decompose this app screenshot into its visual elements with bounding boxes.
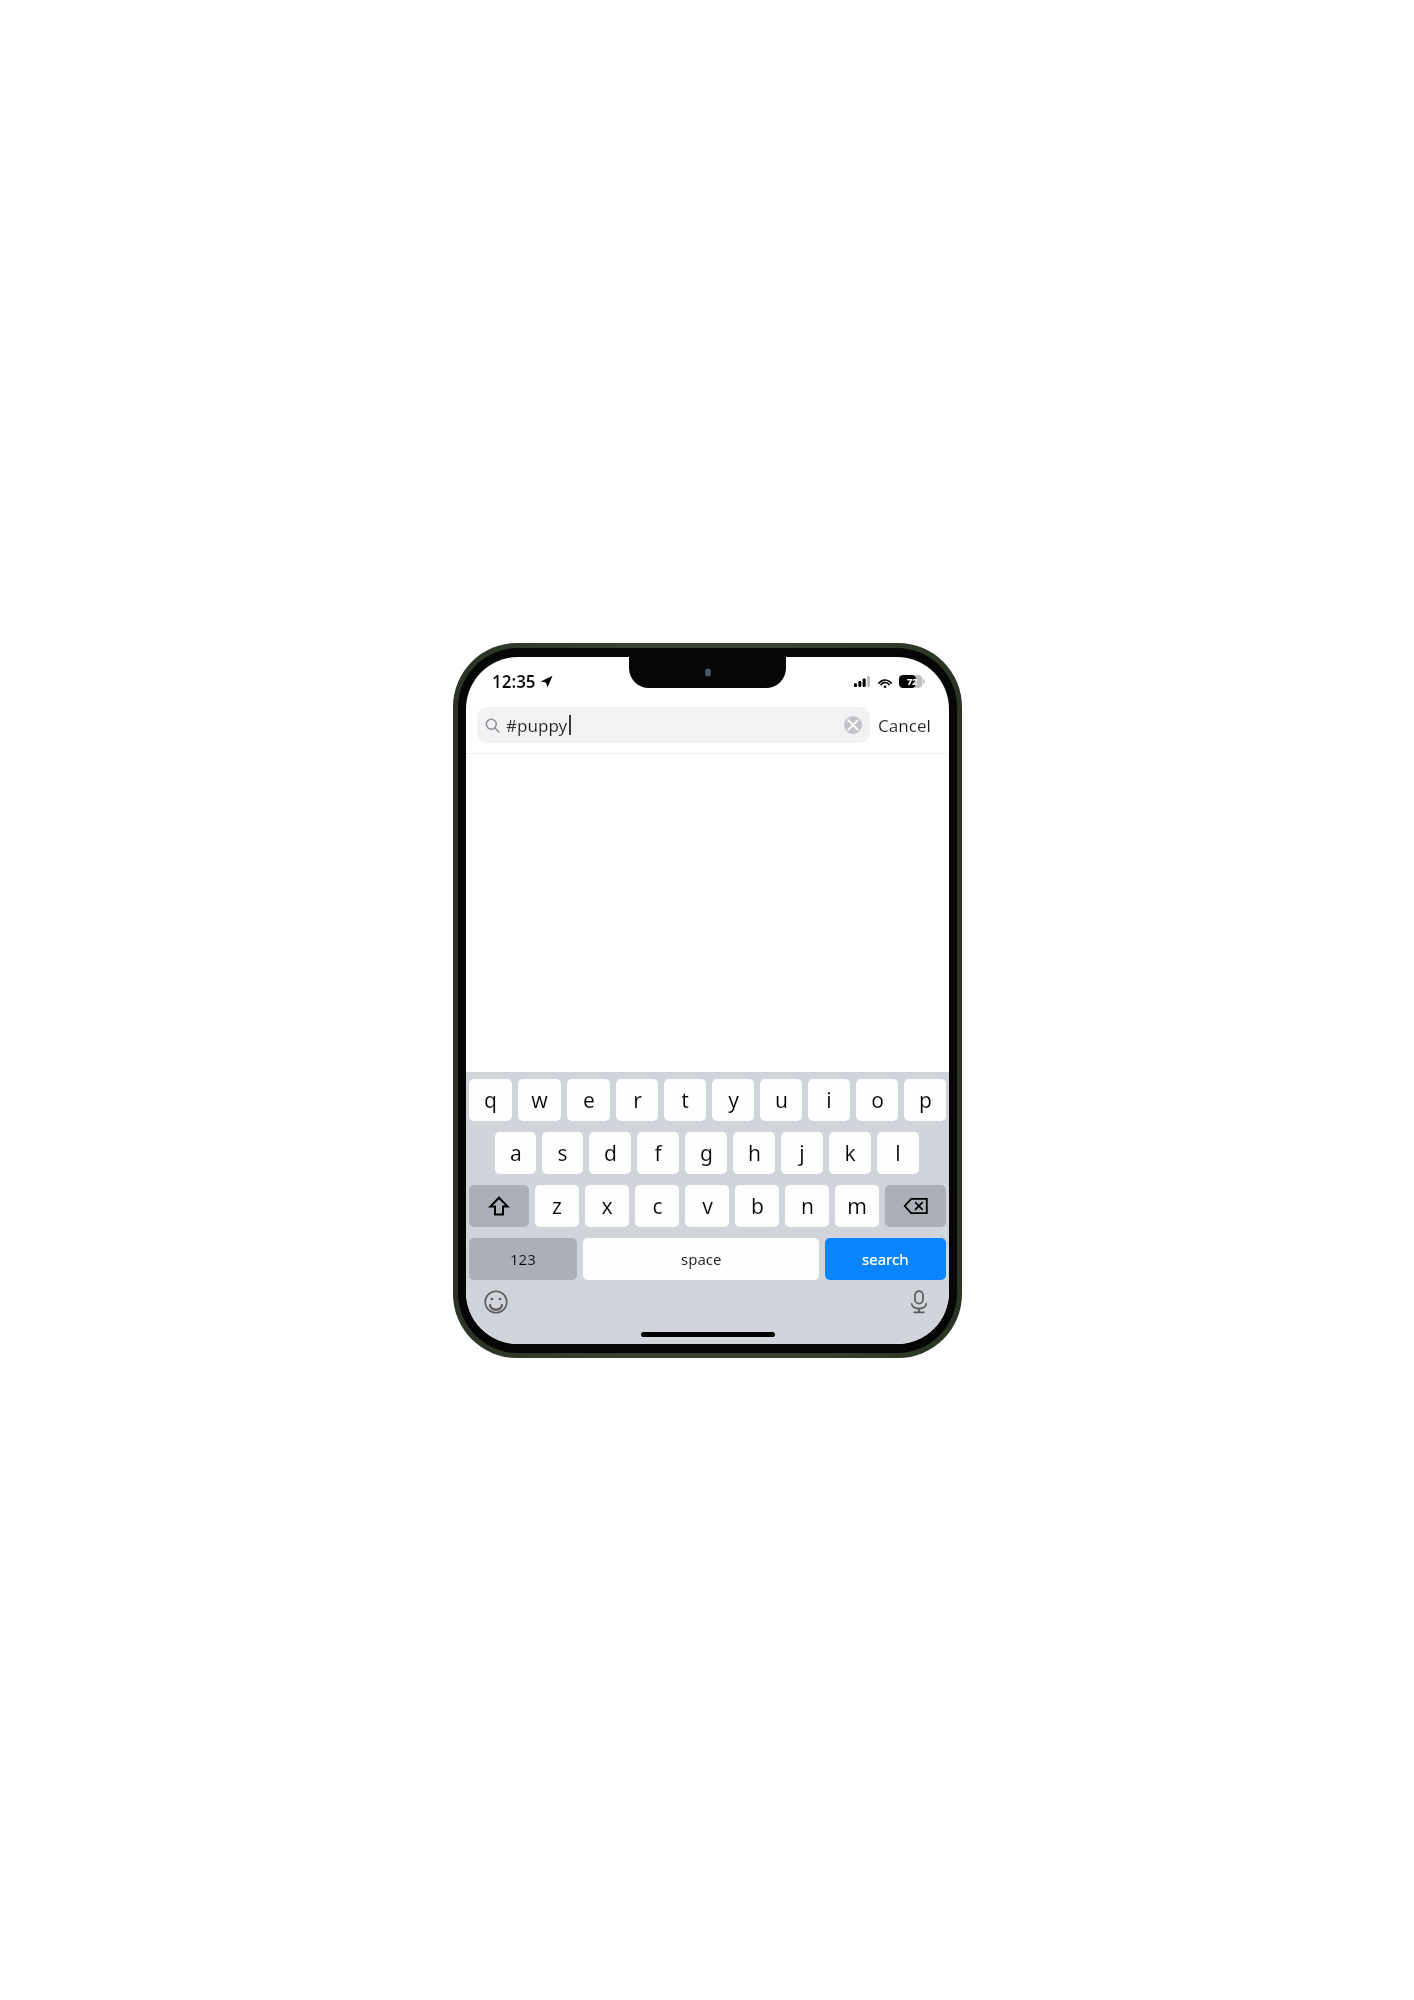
button[interactable]: w xyxy=(518,1079,561,1121)
staticText: m xyxy=(847,1192,867,1221)
staticText: n xyxy=(801,1192,814,1221)
button[interactable]: q xyxy=(469,1079,512,1121)
button[interactable]: Cancel xyxy=(870,708,939,743)
button[interactable]: Clear text xyxy=(844,716,862,734)
staticText: 72 xyxy=(907,675,918,687)
button[interactable]: d xyxy=(589,1132,631,1174)
staticText: e xyxy=(583,1086,595,1115)
button[interactable]: #puppy xyxy=(477,707,870,743)
staticText: i xyxy=(826,1086,832,1115)
button[interactable]: e xyxy=(567,1079,610,1121)
button[interactable]: f xyxy=(637,1132,679,1174)
button[interactable]: c xyxy=(635,1185,679,1227)
staticText: k xyxy=(844,1139,856,1168)
staticText: 123 xyxy=(510,1249,536,1269)
staticText: space xyxy=(681,1249,722,1269)
staticText: x xyxy=(601,1192,613,1221)
staticText: f xyxy=(654,1139,662,1168)
button[interactable]: space xyxy=(583,1238,819,1280)
staticText: search xyxy=(862,1249,909,1269)
staticText: u xyxy=(775,1086,788,1115)
button[interactable]: o xyxy=(856,1079,898,1121)
staticText: j xyxy=(799,1139,805,1168)
staticText: l xyxy=(895,1139,901,1168)
button[interactable]: m xyxy=(835,1185,879,1227)
staticText: c xyxy=(652,1192,663,1221)
button[interactable]: Shift xyxy=(469,1185,529,1227)
button[interactable]: Emoji keyboard xyxy=(482,1288,510,1316)
button[interactable]: h xyxy=(733,1132,775,1174)
staticText: y xyxy=(728,1086,739,1115)
staticText: p xyxy=(919,1086,932,1115)
staticText: t xyxy=(681,1086,689,1115)
button[interactable]: z xyxy=(535,1185,579,1227)
staticText: g xyxy=(700,1139,713,1168)
button[interactable]: y xyxy=(712,1079,754,1121)
button[interactable]: s xyxy=(542,1132,583,1174)
button[interactable]: n xyxy=(785,1185,829,1227)
button[interactable]: u xyxy=(760,1079,802,1121)
staticText: o xyxy=(871,1086,884,1115)
staticText: v xyxy=(702,1192,713,1221)
button[interactable]: v xyxy=(685,1185,729,1227)
staticText: 12:35 xyxy=(492,670,536,693)
staticText: d xyxy=(604,1139,617,1168)
staticText: a xyxy=(510,1139,522,1168)
staticText: h xyxy=(748,1139,761,1168)
button[interactable]: a xyxy=(495,1132,536,1174)
staticText: w xyxy=(531,1086,548,1115)
button[interactable]: Backspace xyxy=(885,1185,946,1227)
button[interactable]: j xyxy=(781,1132,823,1174)
staticText: z xyxy=(552,1192,562,1221)
button[interactable]: x xyxy=(585,1185,629,1227)
button[interactable]: r xyxy=(616,1079,658,1121)
staticText: q xyxy=(484,1086,497,1115)
button[interactable]: Dictation xyxy=(905,1288,933,1316)
button[interactable]: search xyxy=(825,1238,946,1280)
button[interactable]: t xyxy=(664,1079,706,1121)
staticText: #puppy xyxy=(506,714,568,737)
button[interactable]: b xyxy=(735,1185,779,1227)
staticText: r xyxy=(633,1086,642,1115)
button[interactable]: i xyxy=(808,1079,850,1121)
staticText: s xyxy=(557,1139,568,1168)
button[interactable]: 123 xyxy=(469,1238,577,1280)
staticText: b xyxy=(751,1192,764,1221)
button[interactable]: l xyxy=(877,1132,919,1174)
button[interactable]: g xyxy=(685,1132,727,1174)
button[interactable]: p xyxy=(904,1079,946,1121)
button[interactable]: k xyxy=(829,1132,871,1174)
staticText: Cancel xyxy=(878,714,931,737)
